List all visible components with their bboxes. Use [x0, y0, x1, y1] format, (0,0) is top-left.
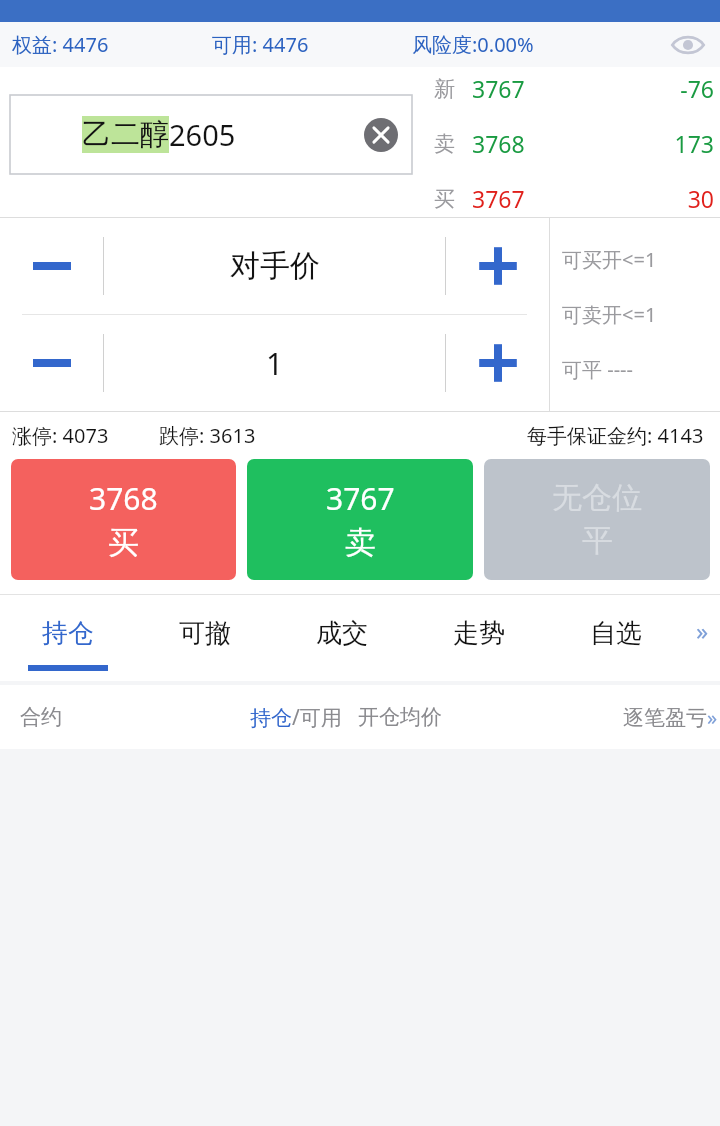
staticText: 3767 [326, 478, 395, 519]
button[interactable]: 成交 [273, 595, 410, 681]
staticText: » [707, 704, 718, 731]
staticText: 173 [592, 128, 714, 159]
button[interactable]: 乙二醇 [10, 95, 412, 174]
staticText: 3768 [472, 128, 592, 159]
staticText: 可买开<=1 [562, 246, 657, 273]
button[interactable]: 更多标签 [684, 595, 720, 681]
button[interactable]: 3767 [247, 459, 473, 580]
button[interactable]: 无仓位 [484, 459, 710, 580]
staticText: 可撤 [179, 617, 231, 650]
button[interactable]: 自选 [547, 595, 684, 681]
staticText: 权益: 4476 [12, 31, 212, 58]
staticText: 1 [266, 343, 284, 384]
staticText: 3767 [472, 73, 592, 104]
staticText: 卖 [345, 523, 376, 562]
staticText: 3768 [89, 478, 158, 519]
staticText: 乙二醇 [82, 116, 169, 153]
staticText: 跌停: 3613 [159, 422, 256, 449]
staticText: 持仓 [250, 705, 292, 731]
staticText: 持仓 [42, 617, 94, 650]
staticText: /可用 [292, 703, 342, 732]
button[interactable]: 减少 [0, 315, 103, 411]
button[interactable]: 1 [104, 315, 445, 411]
staticText: 风险度:0.00% [412, 31, 670, 58]
staticText: » [696, 614, 709, 647]
button[interactable]: 清除 [364, 118, 398, 152]
staticText: 30 [592, 183, 714, 214]
staticText: 可卖开<=1 [562, 301, 657, 328]
button[interactable]: 对手价 [104, 218, 445, 314]
staticText: 每手保证金约: 4143 [527, 422, 704, 449]
staticText: 涨停: 4073 [12, 422, 109, 449]
button[interactable]: 隐藏金额 [670, 27, 706, 63]
button[interactable]: 可撤 [136, 595, 273, 681]
button[interactable]: 增加 [446, 218, 549, 314]
staticText: 可用: 4476 [212, 31, 412, 58]
button[interactable]: 持仓 [0, 595, 136, 681]
staticText: 卖 [434, 131, 472, 157]
staticText: 2605 [169, 115, 236, 154]
staticText: 无仓位 [552, 479, 642, 517]
staticText: 买 [434, 186, 472, 212]
staticText: 成交 [316, 617, 368, 650]
staticText: 开仓均价 [358, 704, 442, 730]
staticText: 3767 [472, 183, 592, 214]
staticText: 走势 [453, 617, 505, 650]
button[interactable]: 增加 [446, 315, 549, 411]
button[interactable]: 减少 [0, 218, 103, 314]
staticText: 新 [434, 76, 472, 102]
staticText: 合约 [20, 704, 250, 730]
staticText: -76 [592, 73, 714, 104]
staticText: 自选 [590, 617, 642, 650]
staticText: 可平 ---- [562, 356, 633, 383]
staticText: 买 [108, 523, 139, 562]
staticText: 对手价 [230, 247, 320, 285]
button[interactable]: 走势 [410, 595, 547, 681]
staticText: 平 [582, 521, 613, 560]
button[interactable]: 逐笔盈亏 [623, 704, 718, 731]
staticText: 逐笔盈亏 [623, 705, 707, 731]
button[interactable]: 3768 [11, 459, 236, 580]
